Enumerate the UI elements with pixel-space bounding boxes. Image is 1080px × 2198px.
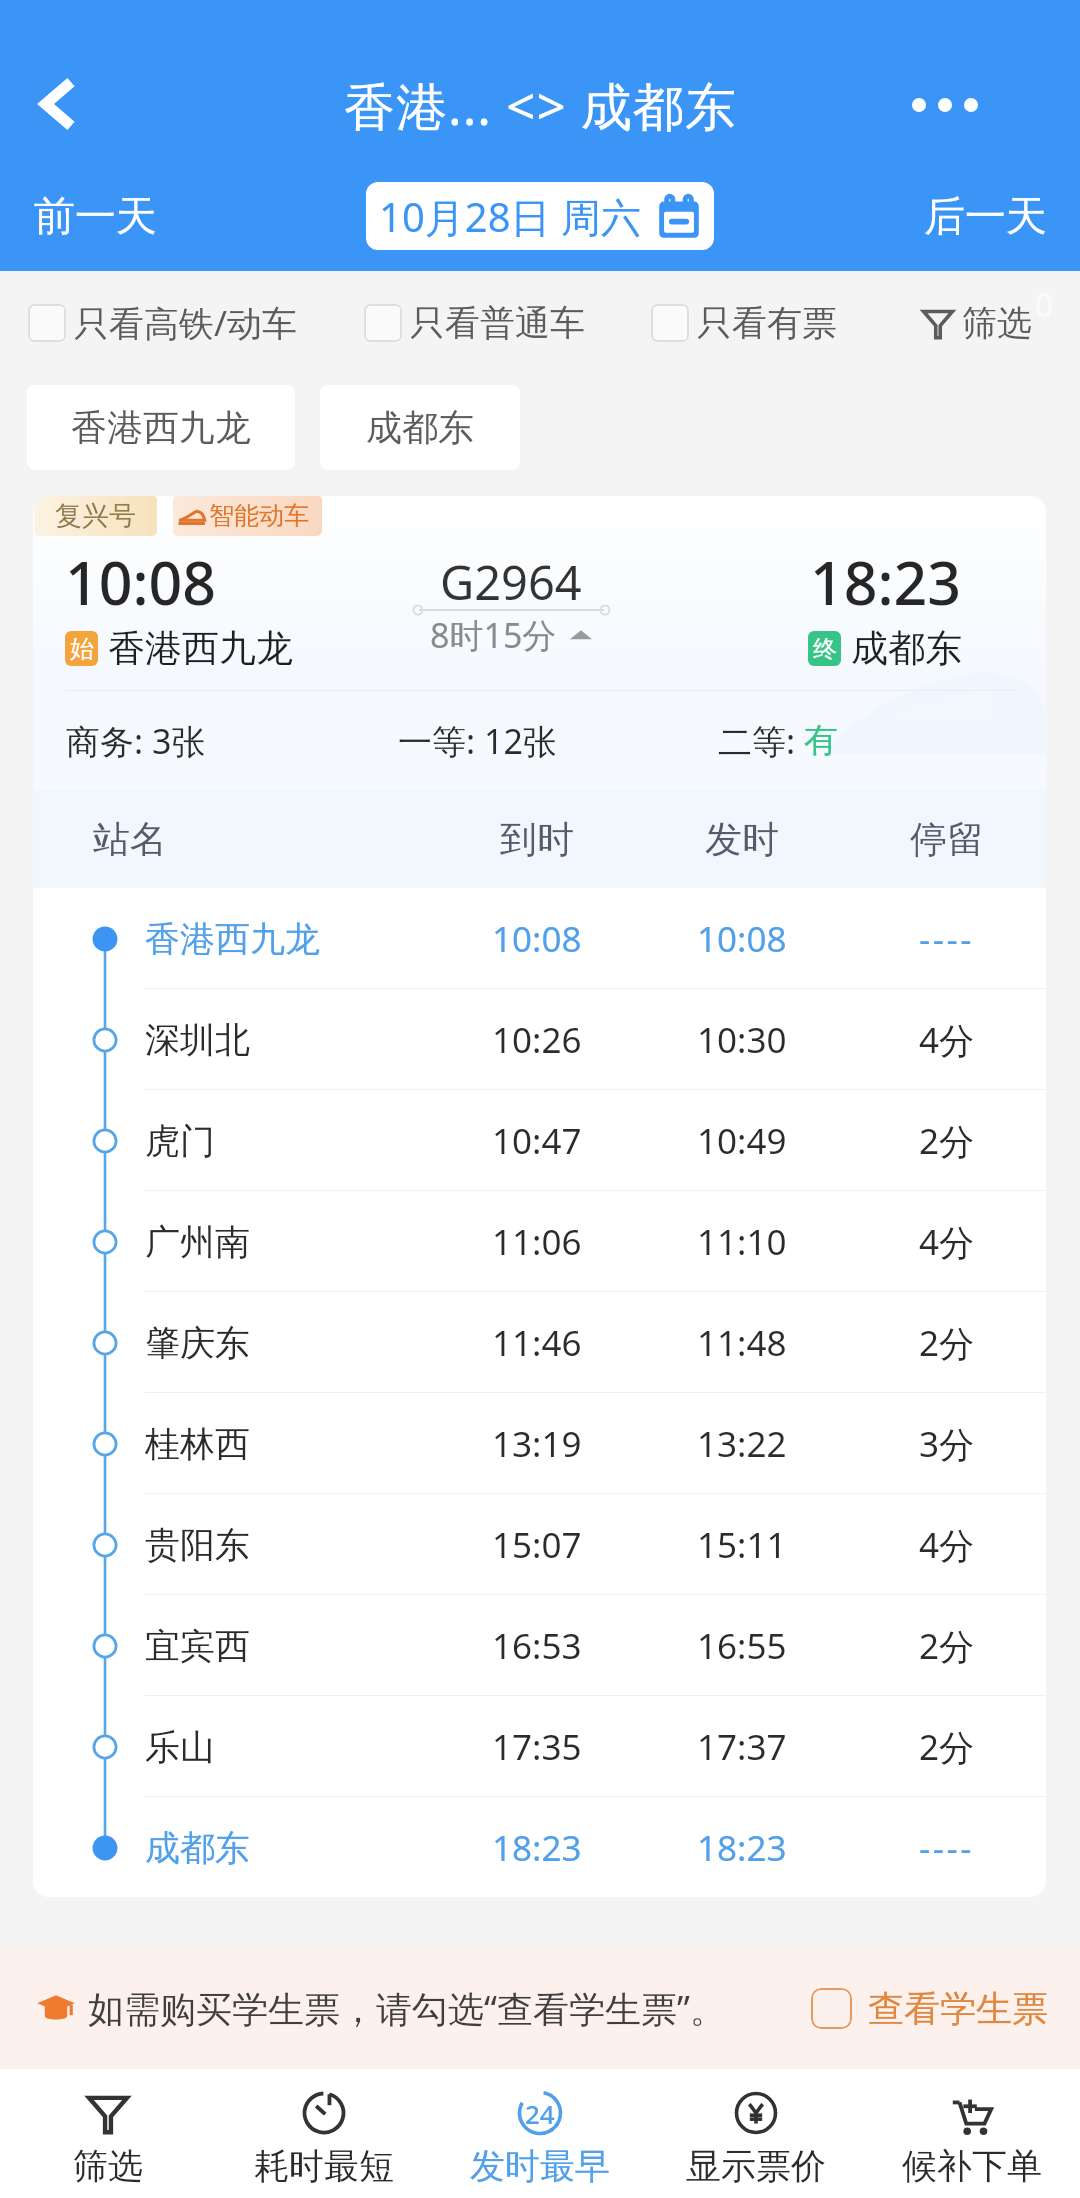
- staticText: 终: [813, 634, 837, 664]
- staticText: 10:26: [492, 1016, 582, 1064]
- staticText: 桂林西: [145, 1422, 250, 1466]
- button[interactable]: 复兴号: [33, 496, 1046, 1897]
- staticText: ----: [919, 915, 975, 963]
- staticText: 16:55: [697, 1622, 787, 1670]
- staticText: 前一天: [34, 191, 157, 243]
- staticText: 只看高铁/动车: [74, 299, 298, 347]
- staticText: 2分: [919, 1622, 975, 1670]
- staticText: 发时: [705, 816, 779, 863]
- staticText: 18:23: [697, 1824, 787, 1872]
- button[interactable]: 宜宾西: [33, 1595, 1046, 1696]
- staticText: 11:10: [697, 1218, 787, 1266]
- staticText: 3分: [919, 1420, 975, 1468]
- staticText: 4分: [919, 1016, 975, 1064]
- staticText: 成都东: [145, 1826, 250, 1870]
- button[interactable]: 乐山: [33, 1696, 1046, 1797]
- staticText: 二等:: [718, 718, 804, 764]
- staticText: 香港西九龙: [71, 405, 251, 450]
- staticText: 4分: [919, 1521, 975, 1569]
- staticText: 深圳北: [145, 1018, 250, 1062]
- staticText: 17:35: [492, 1723, 582, 1771]
- button[interactable]: 筛选: [0, 2069, 216, 2198]
- button[interactable]: 成都东: [320, 385, 520, 470]
- button[interactable]: 深圳北: [33, 989, 1046, 1090]
- staticText: 13:22: [697, 1420, 787, 1468]
- staticText: 候补下单: [902, 2144, 1042, 2188]
- staticText: 如需购买学生票，请勾选“查看学生票”。: [88, 1984, 726, 2033]
- staticText: 2分: [919, 1319, 975, 1367]
- staticText: 16:53: [492, 1622, 582, 1670]
- staticText: 成都东: [851, 625, 962, 672]
- staticText: 宜宾西: [145, 1624, 250, 1668]
- staticText: 18:23: [492, 1824, 582, 1872]
- button[interactable]: Back: [16, 62, 100, 146]
- button[interactable]: 耗时最短: [216, 2069, 432, 2198]
- staticText: 11:06: [492, 1218, 582, 1266]
- staticText: 15:11: [697, 1521, 787, 1569]
- staticText: 智能动车: [209, 500, 309, 531]
- button[interactable]: 查看学生票: [811, 1986, 1080, 2031]
- staticText: 成都东: [366, 405, 474, 450]
- button[interactable]: 后一天: [890, 172, 1080, 262]
- staticText: 乐山: [145, 1725, 215, 1769]
- staticText: 有: [804, 719, 838, 762]
- staticText: 只看有票: [697, 301, 837, 345]
- staticText: 到时: [500, 816, 574, 863]
- staticText: 24: [525, 2096, 555, 2131]
- staticText: 11:46: [492, 1319, 582, 1367]
- staticText: 8时15分: [430, 612, 557, 658]
- staticText: ----: [919, 1824, 975, 1872]
- button[interactable]: 只看普通车: [364, 301, 585, 345]
- button[interactable]: 香港西九龙: [27, 385, 295, 470]
- staticText: 停留: [910, 816, 984, 863]
- staticText: 显示票价: [686, 2144, 826, 2188]
- staticText: 耗时最短: [254, 2144, 394, 2188]
- button[interactable]: 香港西九龙: [33, 888, 1046, 989]
- button[interactable]: 成都东: [33, 1797, 1046, 1897]
- staticText: 后一天: [924, 191, 1047, 243]
- staticText: 复兴号: [55, 499, 136, 533]
- staticText: 11:48: [697, 1319, 787, 1367]
- staticText: 香港西九龙: [145, 917, 320, 961]
- staticText: 筛选: [73, 2144, 143, 2188]
- staticText: 广州南: [145, 1220, 250, 1264]
- button[interactable]: 显示票价: [648, 2069, 864, 2198]
- button[interactable]: 桂林西: [33, 1393, 1046, 1494]
- staticText: 10:47: [492, 1117, 582, 1165]
- button[interactable]: More options: [903, 63, 987, 147]
- staticText: 17:37: [697, 1723, 787, 1771]
- button[interactable]: 广州南: [33, 1191, 1046, 1292]
- staticText: G2964: [440, 550, 582, 614]
- button[interactable]: 10月28日 周六: [366, 182, 714, 250]
- staticText: 4分: [919, 1218, 975, 1266]
- staticText: 一等: 12张: [398, 718, 557, 764]
- staticText: 肇庆东: [145, 1321, 250, 1365]
- button[interactable]: 贵阳东: [33, 1494, 1046, 1595]
- staticText: 香港... <> 成都东: [344, 70, 737, 140]
- staticText: 10:08: [697, 915, 787, 963]
- button[interactable]: 虎门: [33, 1090, 1046, 1191]
- staticText: 商务: 3张: [66, 718, 206, 764]
- button[interactable]: 24: [432, 2069, 648, 2198]
- staticText: 15:07: [492, 1521, 582, 1569]
- button[interactable]: 前一天: [0, 172, 190, 262]
- staticText: 10月28日 周六: [379, 189, 641, 244]
- staticText: 2分: [919, 1117, 975, 1165]
- button[interactable]: 筛选: [922, 301, 1080, 345]
- button[interactable]: 只看有票: [651, 301, 837, 345]
- staticText: 始: [70, 634, 94, 664]
- staticText: 站名: [93, 816, 167, 863]
- staticText: 虎门: [145, 1119, 215, 1163]
- button[interactable]: 候补下单: [864, 2069, 1080, 2198]
- button[interactable]: 只看高铁/动车: [28, 299, 298, 347]
- button[interactable]: 肇庆东: [33, 1292, 1046, 1393]
- staticText: 13:19: [492, 1420, 582, 1468]
- staticText: 10:30: [697, 1016, 787, 1064]
- staticText: 香港西九龙: [108, 625, 293, 672]
- staticText: 2分: [919, 1723, 975, 1771]
- staticText: 贵阳东: [145, 1523, 250, 1567]
- staticText: 查看学生票: [868, 1986, 1048, 2031]
- staticText: 10:08: [65, 542, 217, 622]
- staticText: 18:23: [810, 542, 962, 622]
